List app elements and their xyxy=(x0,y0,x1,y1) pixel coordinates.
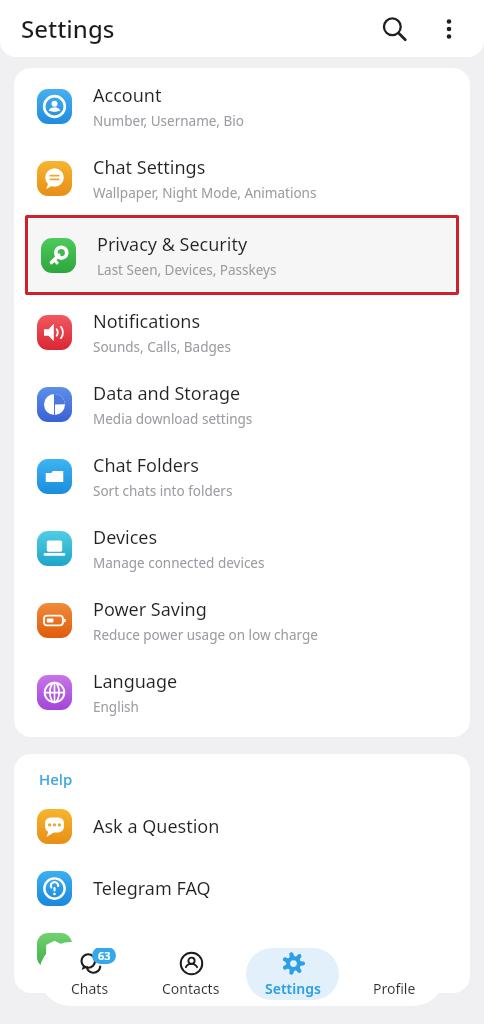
button[interactable]: Search xyxy=(373,8,415,50)
staticText: Sounds, Calls, Badges xyxy=(93,338,231,356)
staticText: Reduce power usage on low charge xyxy=(93,626,318,644)
staticText: Chats xyxy=(71,979,109,998)
staticText: Wallpaper, Night Mode, Animations xyxy=(93,184,317,202)
staticText: Privacy & Security xyxy=(97,232,248,257)
button[interactable]: Language xyxy=(14,656,470,728)
staticText: Chat Folders xyxy=(93,453,199,478)
staticText: Settings xyxy=(265,979,321,998)
staticText: Profile xyxy=(373,979,416,998)
staticText: Number, Username, Bio xyxy=(93,112,244,130)
staticText: Help xyxy=(39,769,73,789)
button[interactable]: Notifications xyxy=(14,296,470,368)
button[interactable]: 63 xyxy=(39,942,140,1006)
staticText: Contacts xyxy=(162,979,220,998)
button[interactable]: Data and Storage xyxy=(14,368,470,440)
button[interactable]: Settings xyxy=(241,942,343,1006)
button[interactable]: Power Saving xyxy=(14,584,470,656)
staticText: Privacy Policy xyxy=(93,938,207,963)
staticText: Settings xyxy=(21,12,115,45)
staticText: Chat Settings xyxy=(93,155,206,180)
button[interactable]: Ask a Question xyxy=(14,795,470,857)
staticText: Power Saving xyxy=(93,597,207,622)
staticText: 63 xyxy=(98,948,111,963)
staticText: English xyxy=(93,698,139,716)
button[interactable]: Privacy Policy xyxy=(14,919,470,981)
button[interactable]: Privacy & Security xyxy=(29,219,455,291)
button[interactable]: Chat Settings xyxy=(14,142,470,214)
button[interactable]: Contacts xyxy=(140,942,241,1006)
button[interactable]: More options xyxy=(430,10,468,48)
staticText: Media download settings xyxy=(93,410,253,428)
staticText: Ask a Question xyxy=(93,814,220,839)
button[interactable]: Telegram FAQ xyxy=(14,857,470,919)
staticText: Manage connected devices xyxy=(93,554,265,572)
button[interactable]: Chat Folders xyxy=(14,440,470,512)
staticText: Last Seen, Devices, Passkeys xyxy=(97,261,277,279)
button[interactable]: Profile xyxy=(343,942,445,1006)
staticText: Account xyxy=(93,83,162,108)
button[interactable]: Account xyxy=(14,70,470,142)
button[interactable]: Devices xyxy=(14,512,470,584)
staticText: Language xyxy=(93,669,178,694)
staticText: Notifications xyxy=(93,309,201,334)
staticText: Sort chats into folders xyxy=(93,482,233,500)
staticText: Data and Storage xyxy=(93,381,241,406)
staticText: Telegram FAQ xyxy=(93,876,211,901)
staticText: Devices xyxy=(93,525,158,550)
